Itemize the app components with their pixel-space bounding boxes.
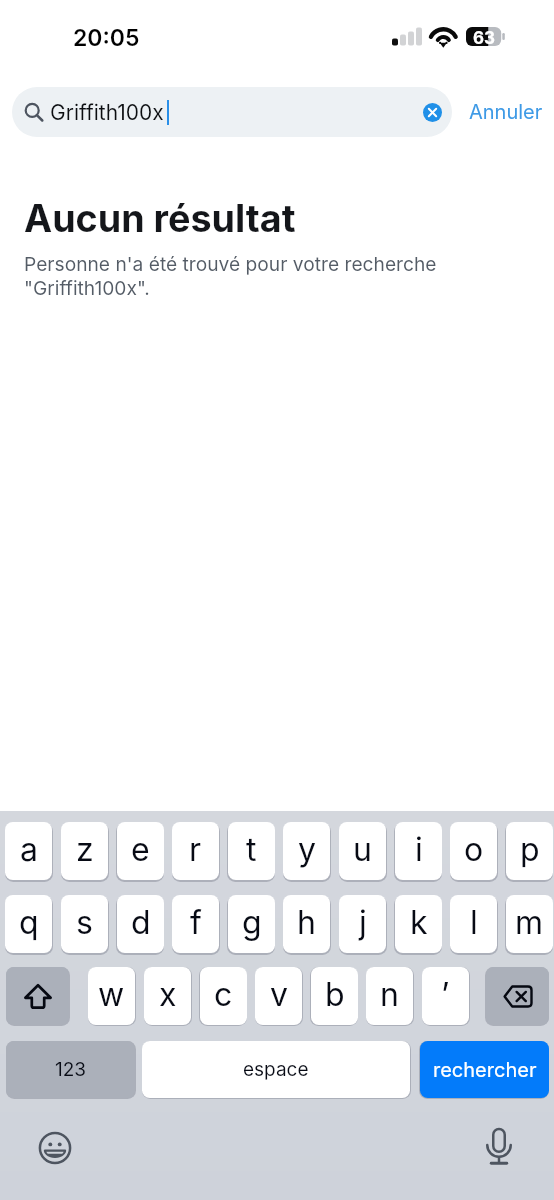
staticText: l xyxy=(470,903,478,942)
button[interactable]: w xyxy=(88,967,135,1025)
staticText: rechercher xyxy=(433,1058,537,1082)
staticText: n xyxy=(380,975,399,1014)
staticText: s xyxy=(76,903,93,942)
button[interactable]: j xyxy=(339,895,386,953)
button[interactable]: c xyxy=(200,967,247,1025)
button[interactable]: b xyxy=(311,967,358,1025)
staticText: w xyxy=(98,975,125,1014)
staticText: j xyxy=(359,903,367,942)
button[interactable]: a xyxy=(5,822,52,880)
staticText: a xyxy=(20,830,38,869)
staticText: b xyxy=(325,975,345,1014)
button[interactable]: h xyxy=(283,895,330,953)
staticText: c xyxy=(214,975,233,1014)
staticText: 63 xyxy=(473,28,496,49)
button[interactable]: Annuler xyxy=(462,87,550,137)
button[interactable]: m xyxy=(506,895,553,953)
staticText: r xyxy=(189,830,202,869)
staticText: h xyxy=(297,903,316,942)
staticText: Aucun résultat xyxy=(24,195,296,241)
button[interactable]: i xyxy=(395,822,442,880)
button[interactable]: z xyxy=(61,822,108,880)
button[interactable]: x xyxy=(144,967,191,1025)
button[interactable]: r xyxy=(172,822,219,880)
button[interactable]: u xyxy=(339,822,386,880)
button[interactable]: f xyxy=(172,895,219,953)
staticText: k xyxy=(410,903,428,942)
button[interactable]: espace xyxy=(142,1041,410,1098)
button[interactable]: 123 xyxy=(6,1041,135,1098)
button[interactable]: Griffith100x xyxy=(12,87,452,137)
button[interactable]: y xyxy=(283,822,330,880)
staticText: y xyxy=(298,830,316,869)
staticText: o xyxy=(464,830,484,869)
button[interactable]: Effacer xyxy=(423,103,442,122)
button[interactable]: n xyxy=(366,967,413,1025)
button[interactable]: q xyxy=(5,895,52,953)
staticText: f xyxy=(190,903,202,942)
button[interactable]: s xyxy=(61,895,108,953)
staticText: 20:05 xyxy=(73,24,140,52)
button[interactable]: ’ xyxy=(422,967,469,1025)
button[interactable]: rechercher xyxy=(420,1041,549,1098)
staticText: m xyxy=(515,903,544,942)
button[interactable]: l xyxy=(450,895,497,953)
button[interactable]: g xyxy=(228,895,275,953)
staticText: q xyxy=(19,903,39,942)
button[interactable]: k xyxy=(395,895,442,953)
button[interactable]: Dictée xyxy=(481,1125,517,1169)
staticText: 123 xyxy=(55,1058,87,1081)
button[interactable]: t xyxy=(228,822,275,880)
staticText: v xyxy=(270,975,288,1014)
staticText: ’ xyxy=(441,975,450,1014)
staticText: p xyxy=(520,830,540,869)
button[interactable]: o xyxy=(450,822,497,880)
button[interactable]: p xyxy=(506,822,553,880)
staticText: Annuler xyxy=(469,100,543,124)
button[interactable]: Majuscule xyxy=(6,967,69,1025)
button[interactable]: v xyxy=(255,967,302,1025)
staticText: e xyxy=(131,830,150,869)
staticText: t xyxy=(246,830,257,869)
staticText: Griffith100x xyxy=(50,100,164,125)
staticText: d xyxy=(131,903,151,942)
staticText: z xyxy=(76,830,94,869)
button[interactable]: Émoji xyxy=(36,1129,73,1166)
button[interactable]: d xyxy=(117,895,164,953)
button[interactable]: Retour arrière xyxy=(486,967,549,1025)
staticText: g xyxy=(242,903,262,942)
staticText: espace xyxy=(243,1058,309,1081)
staticText: i xyxy=(415,830,423,869)
staticText: x xyxy=(159,975,177,1014)
staticText: Personne n'a été trouvé pour votre reche… xyxy=(24,252,444,299)
button[interactable]: e xyxy=(117,822,164,880)
staticText: u xyxy=(353,830,372,869)
